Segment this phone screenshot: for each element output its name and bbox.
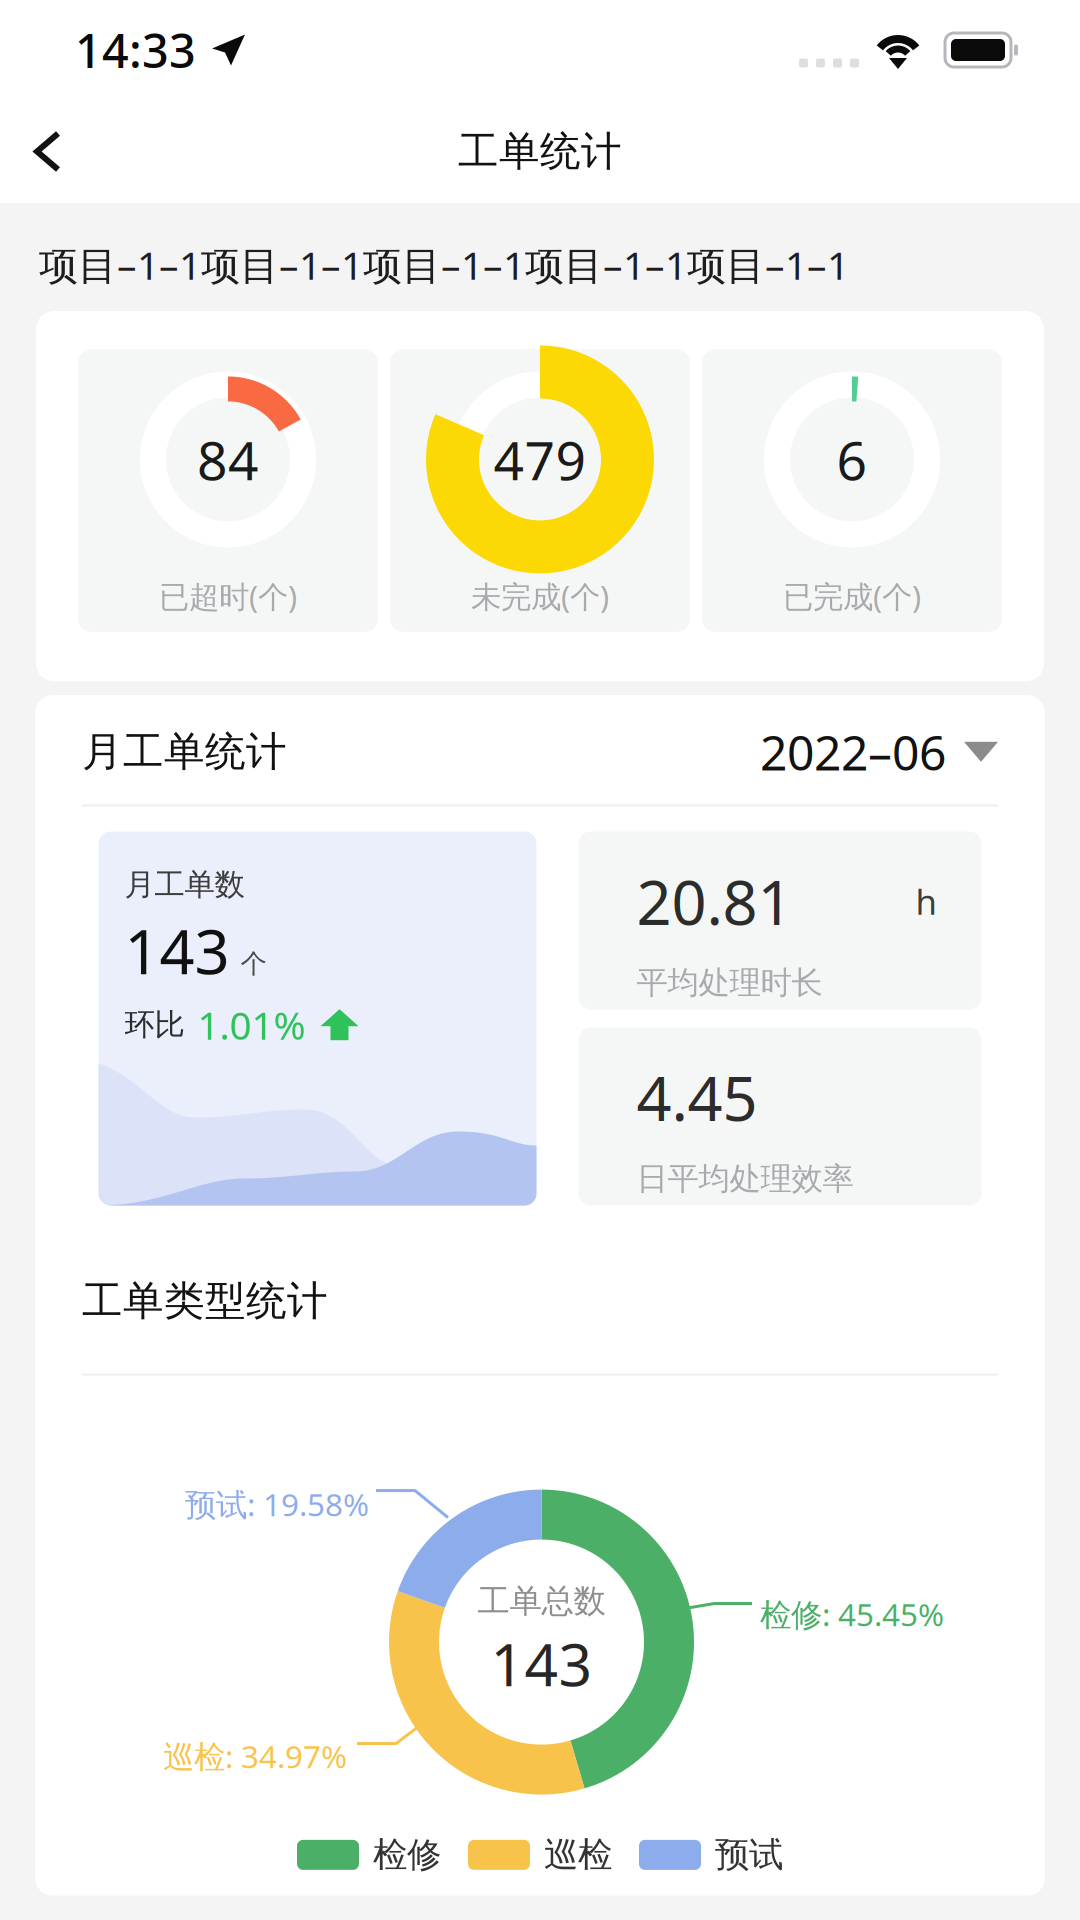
staticText: 4.45: [636, 1055, 757, 1139]
staticText: 环比: [124, 1005, 184, 1044]
staticText: 143: [124, 909, 229, 992]
staticText: 巡检: 34.97%: [163, 1735, 347, 1777]
staticText: 工单统计: [458, 126, 622, 177]
staticText: 1.01%: [197, 998, 305, 1051]
staticText: 2022–06: [760, 719, 946, 784]
staticText: 20.81: [636, 859, 792, 943]
staticText: 日平均处理效率: [636, 1159, 853, 1199]
staticText: 巡检: [544, 1833, 612, 1877]
staticText: 月工单统计: [82, 726, 287, 777]
button[interactable]: 2022–06: [760, 719, 998, 784]
staticText: 月工单数: [124, 865, 244, 904]
staticText: h: [915, 878, 936, 925]
staticText: 已超时(个): [159, 575, 297, 617]
staticText: 未完成(个): [471, 575, 609, 617]
staticText: 项目–1–1项目–1–1项目–1–1项目–1–1项目–1–1: [39, 238, 849, 291]
staticText: 预试: 19.58%: [185, 1483, 369, 1525]
staticText: 平均处理时长: [636, 963, 822, 1003]
staticText: 检修: 45.45%: [760, 1593, 944, 1635]
button[interactable]: Back: [0, 100, 90, 203]
staticText: 479: [493, 423, 586, 496]
staticText: 143: [490, 1623, 592, 1703]
staticText: 工单类型统计: [82, 1275, 328, 1327]
staticText: 个: [240, 947, 266, 980]
staticText: 84: [197, 423, 259, 496]
staticText: 检修: [373, 1833, 441, 1877]
staticText: 已完成(个): [783, 575, 921, 617]
staticText: 6: [836, 423, 867, 496]
staticText: 工单总数: [477, 1581, 605, 1622]
staticText: 14:33: [75, 18, 196, 82]
staticText: 预试: [715, 1833, 783, 1877]
